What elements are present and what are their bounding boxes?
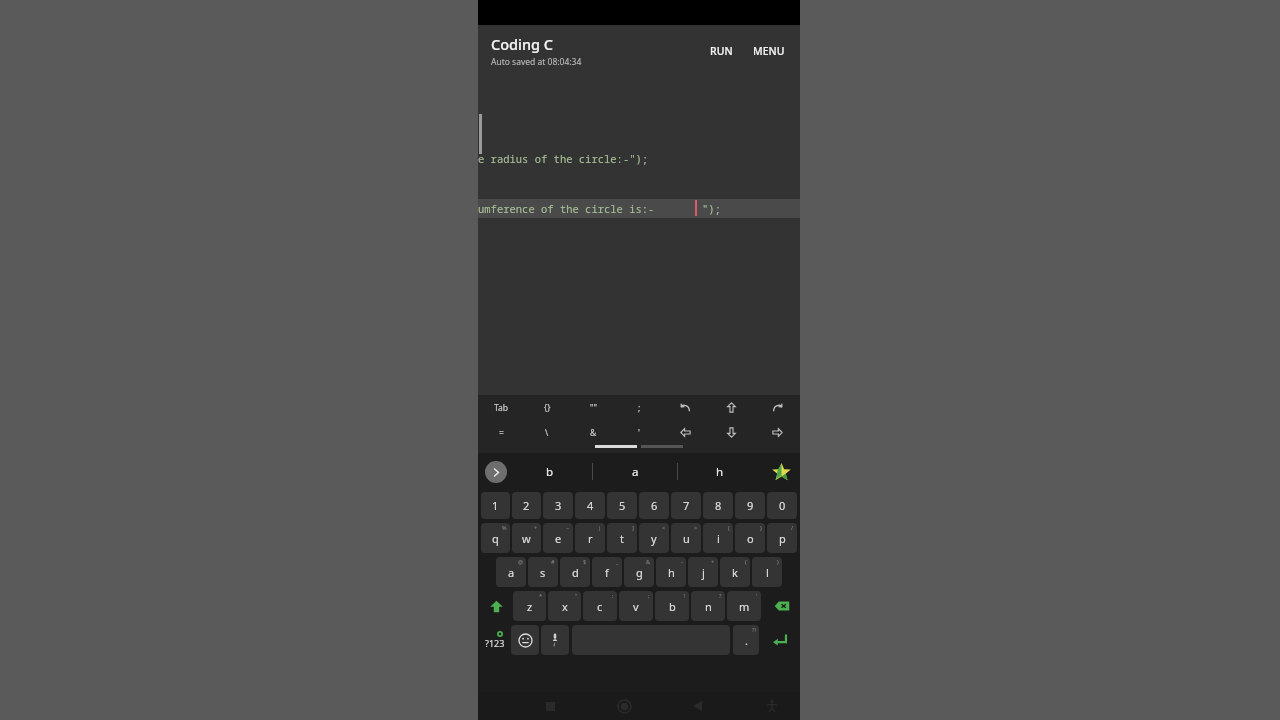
button[interactable]: c <box>583 591 617 621</box>
button[interactable]: . <box>733 625 759 655</box>
button[interactable]: 6 <box>639 492 669 519</box>
button[interactable]: Arrow <box>662 395 708 420</box>
button[interactable]: RUN <box>703 38 740 64</box>
button[interactable]: & <box>570 420 616 445</box>
staticText: 2 <box>523 498 530 513</box>
button[interactable]: {} <box>524 395 570 420</box>
button[interactable]: w <box>512 523 541 553</box>
button[interactable]: z <box>513 591 546 621</box>
button[interactable]: b <box>507 453 592 490</box>
button[interactable]: ' <box>616 420 662 445</box>
button[interactable]: 8 <box>703 492 733 519</box>
staticText: i <box>717 531 720 546</box>
staticText: ' <box>638 427 640 439</box>
button[interactable]: Sticker <box>762 453 800 490</box>
button[interactable]: y <box>639 523 669 553</box>
button[interactable]: "" <box>570 395 616 420</box>
button[interactable]: g <box>624 557 654 587</box>
button[interactable]: 2 <box>512 492 541 519</box>
button[interactable]: Arrow <box>662 420 708 445</box>
button[interactable]: f <box>592 557 622 587</box>
staticText: ) <box>760 524 762 531</box>
staticText: ' <box>756 592 758 599</box>
staticText: + <box>711 558 715 565</box>
button[interactable]: Back <box>684 692 712 720</box>
button[interactable]: d <box>560 557 590 587</box>
staticText: ; <box>638 402 641 414</box>
button[interactable]: r <box>575 523 605 553</box>
staticText: $ <box>583 558 587 565</box>
button[interactable]: Shift <box>482 591 510 621</box>
button[interactable]: Recents <box>536 692 564 720</box>
button[interactable]: 1 <box>481 492 510 519</box>
staticText: h <box>668 565 675 580</box>
staticText: ) <box>777 558 779 565</box>
staticText: ~ <box>566 524 570 531</box>
button[interactable]: u <box>671 523 701 553</box>
button[interactable]: Backspace <box>764 591 796 621</box>
button[interactable]: Expand suggestions <box>485 461 507 483</box>
button[interactable]: t <box>607 523 637 553</box>
button[interactable]: MENU <box>746 38 792 64</box>
button[interactable]: a <box>593 453 677 490</box>
button[interactable]: b <box>655 591 689 621</box>
button[interactable]: h <box>678 453 762 490</box>
button[interactable]: q <box>481 523 510 553</box>
staticText: ] <box>632 524 634 531</box>
staticText: & <box>590 427 597 439</box>
button[interactable]: Voice input <box>541 625 569 655</box>
button[interactable]: k <box>720 557 750 587</box>
button[interactable]: n <box>691 591 725 621</box>
button[interactable]: 0 <box>767 492 797 519</box>
button[interactable]: 7 <box>671 492 701 519</box>
button[interactable]: \ <box>524 420 570 445</box>
staticText: c <box>597 599 603 614</box>
staticText: . <box>745 633 748 648</box>
button[interactable]: s <box>528 557 558 587</box>
button[interactable]: 9 <box>735 492 765 519</box>
staticText: l <box>766 565 769 580</box>
button[interactable]: e radius of the circle:-"); <box>478 76 800 395</box>
staticText: b <box>669 599 676 614</box>
staticText: + <box>534 524 538 531</box>
button[interactable]: 5 <box>607 492 637 519</box>
staticText: 5 <box>619 498 626 513</box>
button[interactable]: Arrow <box>754 420 800 445</box>
staticText: ?123 <box>485 637 505 649</box>
button[interactable]: Tab <box>478 395 524 420</box>
button[interactable]: ; <box>616 395 662 420</box>
button[interactable]: 3 <box>543 492 573 519</box>
staticText: n <box>705 599 712 614</box>
button[interactable]: Arrow <box>708 395 754 420</box>
button[interactable]: l <box>752 557 782 587</box>
staticText: | <box>598 524 602 531</box>
button[interactable]: p <box>767 523 797 553</box>
button[interactable]: 4 <box>575 492 605 519</box>
button[interactable]: = <box>478 420 524 445</box>
staticText: e <box>555 531 562 546</box>
button[interactable]: Home <box>610 692 638 720</box>
staticText: "); <box>702 202 721 216</box>
button[interactable]: i <box>703 523 733 553</box>
button[interactable]: e <box>543 523 573 553</box>
button[interactable]: h <box>656 557 686 587</box>
staticText: j <box>702 565 705 580</box>
button[interactable]: v <box>619 591 653 621</box>
staticText: {} <box>544 402 551 414</box>
button[interactable]: j <box>688 557 718 587</box>
button[interactable]: Arrow <box>754 395 800 420</box>
button[interactable]: Emoji <box>511 625 539 655</box>
button[interactable]: Arrow <box>708 420 754 445</box>
button[interactable]: m <box>727 591 761 621</box>
button[interactable]: ?123 <box>480 623 510 657</box>
button[interactable]: x <box>548 591 581 621</box>
staticText: u <box>683 531 690 546</box>
staticText: = <box>499 427 504 439</box>
button[interactable]: Enter <box>762 625 796 655</box>
staticText: < <box>662 524 666 531</box>
button[interactable]: o <box>735 523 765 553</box>
staticText: * <box>539 592 543 599</box>
button[interactable]: a <box>496 557 526 587</box>
